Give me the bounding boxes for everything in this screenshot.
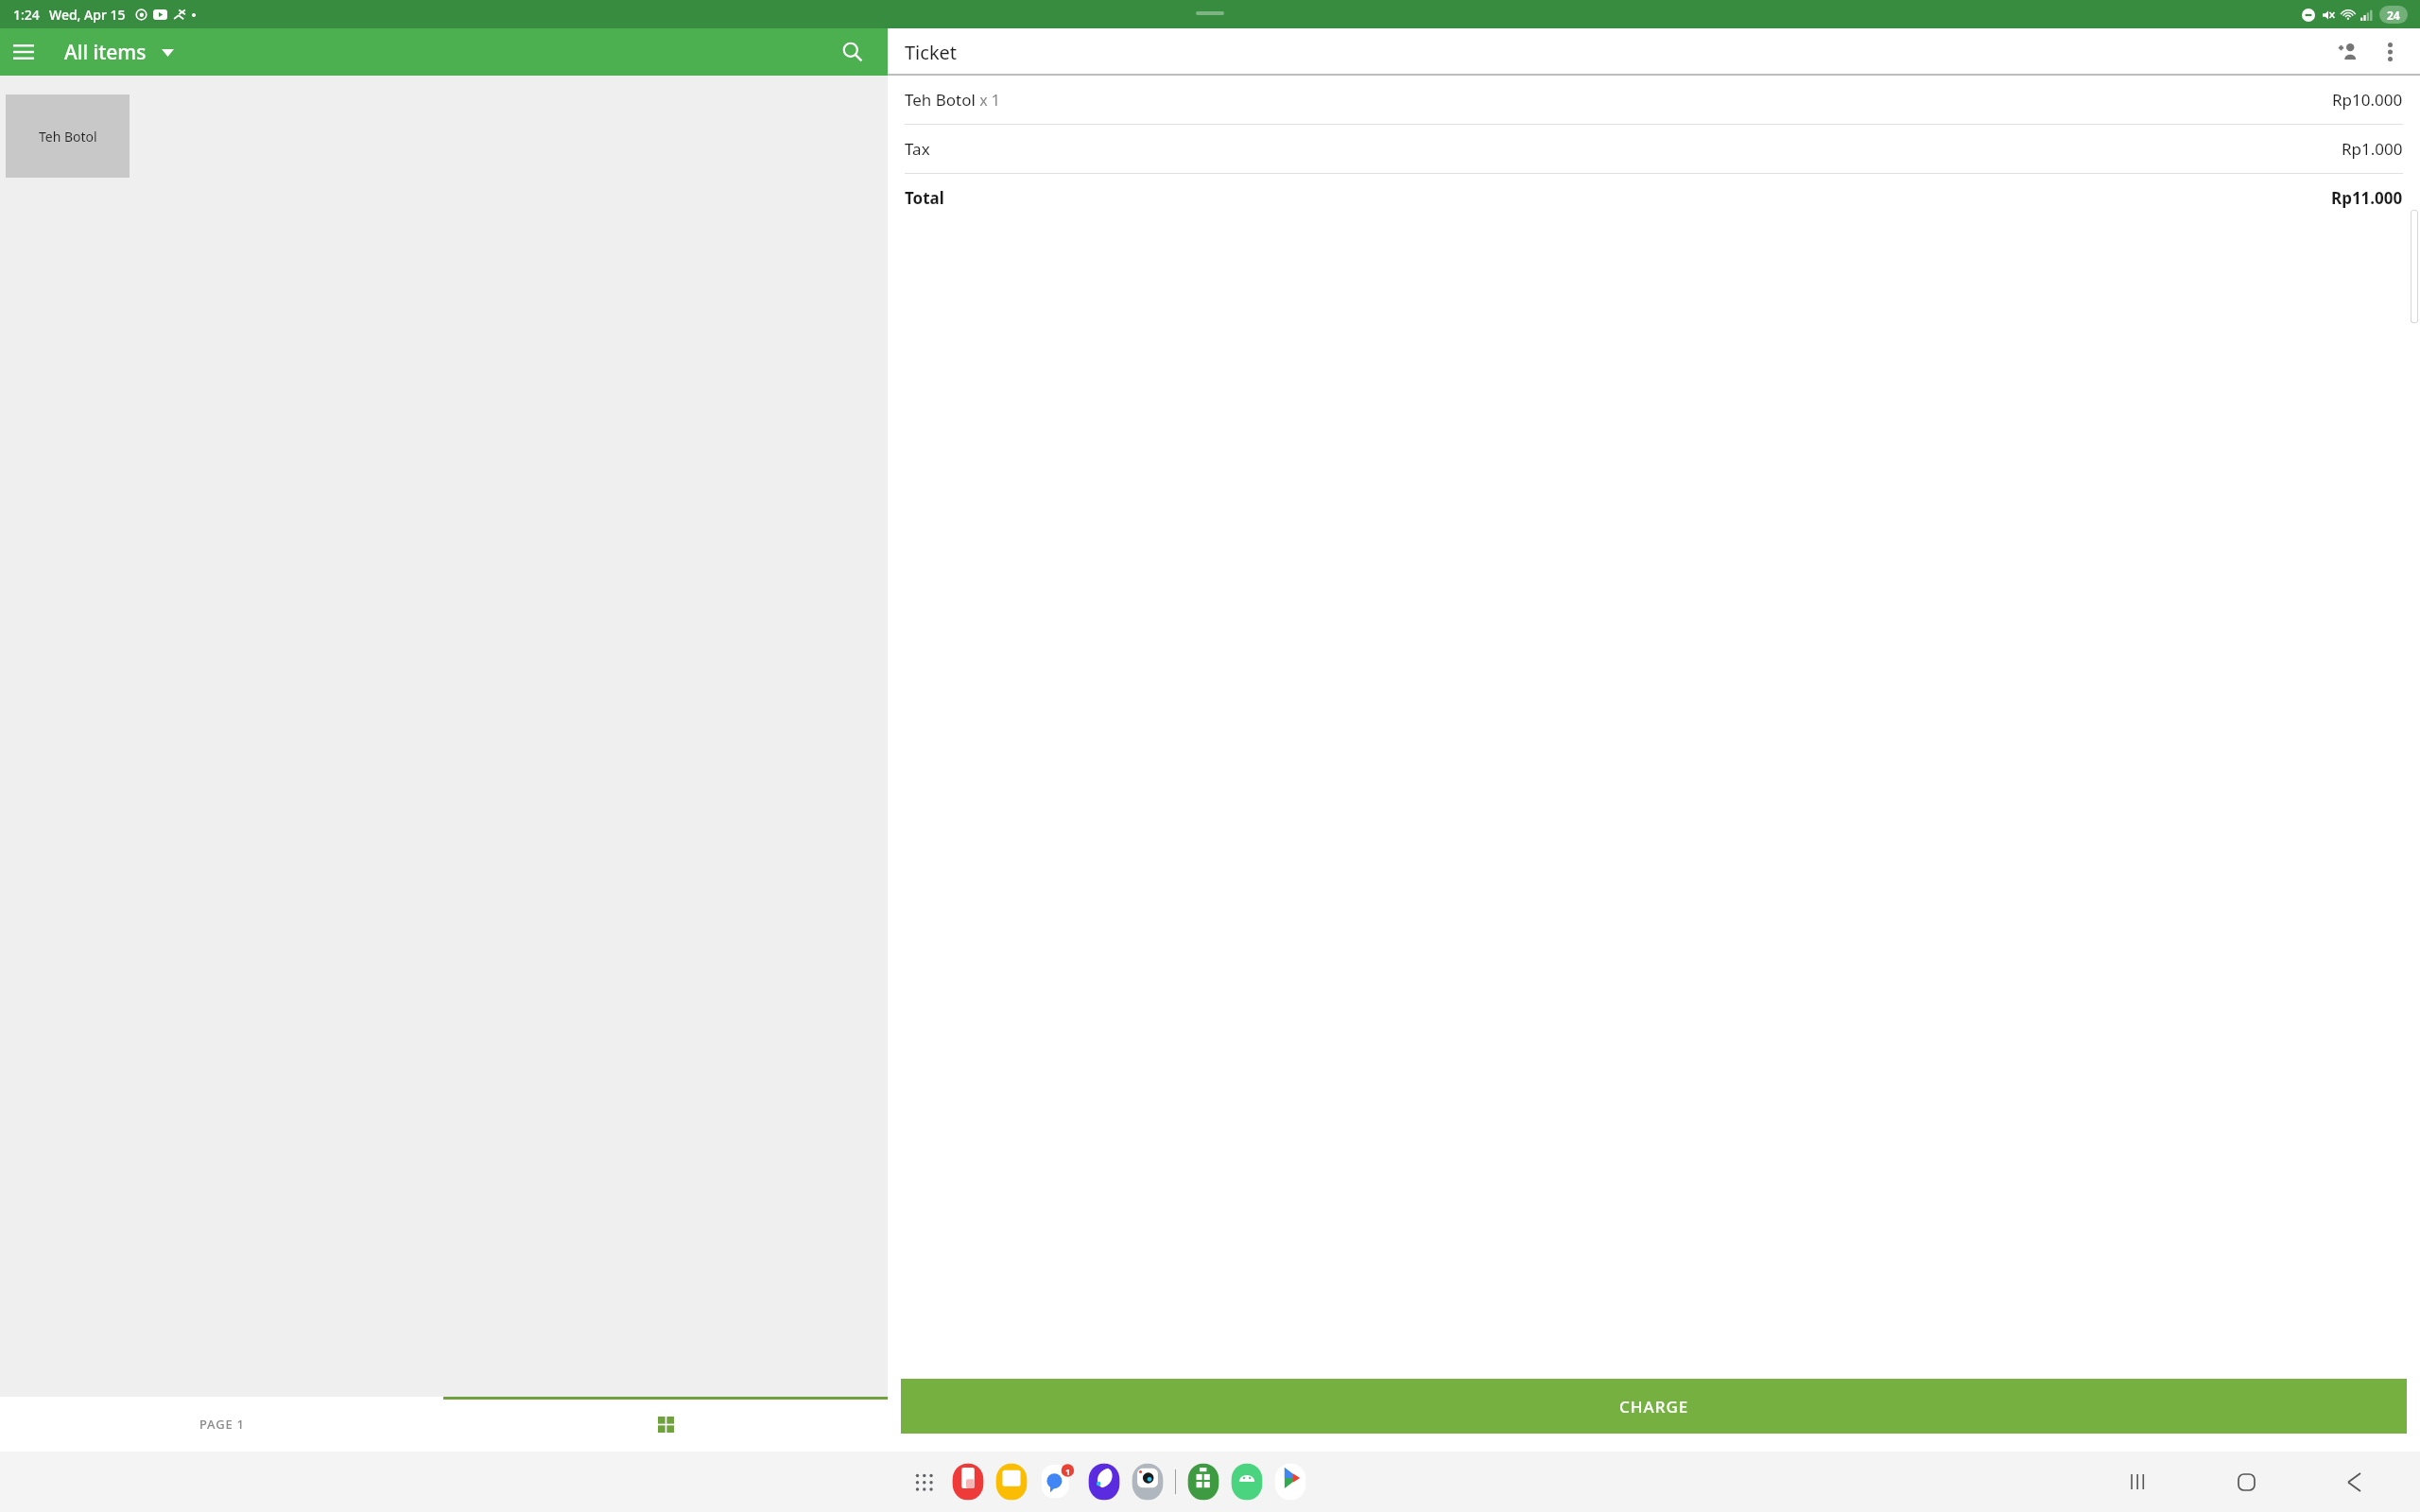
staticText: Teh Botol xyxy=(39,128,97,146)
staticText: All items xyxy=(64,39,147,66)
staticText: 24 xyxy=(2387,8,2400,23)
button[interactable]: Messages xyxy=(1039,1463,1077,1501)
button[interactable]: Teh Botol xyxy=(888,76,2420,124)
button[interactable]: Tax xyxy=(888,125,2420,173)
button[interactable]: Play Store xyxy=(1274,1462,1306,1502)
button[interactable]: Recent apps xyxy=(2117,1461,2159,1503)
staticText: Ticket xyxy=(905,40,958,65)
button[interactable]: Search xyxy=(831,30,874,74)
button[interactable]: CHARGE xyxy=(901,1379,2407,1434)
staticText: Rp1.000 xyxy=(2342,138,2403,160)
button[interactable]: Android xyxy=(1231,1462,1263,1502)
button[interactable]: All items xyxy=(60,31,178,74)
button[interactable]: All apps xyxy=(907,1465,941,1499)
staticText: PAGE 1 xyxy=(199,1416,245,1433)
staticText: 1 xyxy=(1065,1466,1071,1477)
button[interactable]: Total xyxy=(888,174,2420,222)
button[interactable]: PAGE 1 xyxy=(0,1397,443,1452)
staticText: CHARGE xyxy=(1619,1396,1689,1417)
staticText: x 1 xyxy=(976,90,1000,111)
button[interactable]: Gallery xyxy=(952,1462,984,1502)
button[interactable]: Internet xyxy=(1088,1462,1120,1502)
button[interactable]: All items grid xyxy=(443,1397,888,1452)
button[interactable]: Open navigation menu xyxy=(0,28,47,76)
button[interactable]: More options xyxy=(2369,31,2411,73)
staticText: Rp10.000 xyxy=(2332,89,2403,111)
staticText: Rp11.000 xyxy=(2331,187,2403,209)
staticText: Tax xyxy=(905,138,930,160)
staticText: Wed, Apr 15 xyxy=(49,6,126,24)
button[interactable]: Teh Botol xyxy=(6,94,130,178)
staticText: Total xyxy=(905,187,944,209)
staticText: 1:24 xyxy=(13,6,40,24)
button[interactable]: Galaxy Store xyxy=(1187,1462,1219,1502)
button[interactable]: Add customer xyxy=(2327,31,2369,73)
button[interactable]: My Files xyxy=(995,1462,1028,1502)
button[interactable]: Camera xyxy=(1132,1462,1164,1502)
button[interactable]: Home xyxy=(2225,1461,2267,1503)
staticText: Teh Botol xyxy=(905,89,976,111)
button[interactable]: Back xyxy=(2333,1461,2375,1503)
